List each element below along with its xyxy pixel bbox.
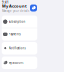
staticText: My Account bbox=[2, 3, 27, 9]
staticText: Subscription bbox=[9, 20, 26, 23]
staticText: Notifications bbox=[9, 46, 26, 50]
button[interactable]: Payments bbox=[2, 28, 37, 40]
button[interactable]: My Account bbox=[2, 56, 37, 69]
button[interactable]: Notifications bbox=[2, 42, 37, 54]
staticText: Payments bbox=[9, 32, 21, 36]
staticText: 9:41 bbox=[2, 1, 9, 4]
button[interactable]: Profile bbox=[30, 4, 37, 11]
staticText: My Account bbox=[9, 61, 24, 64]
staticText: Manage your details bbox=[2, 9, 29, 13]
button[interactable]: Subscription bbox=[2, 15, 37, 28]
